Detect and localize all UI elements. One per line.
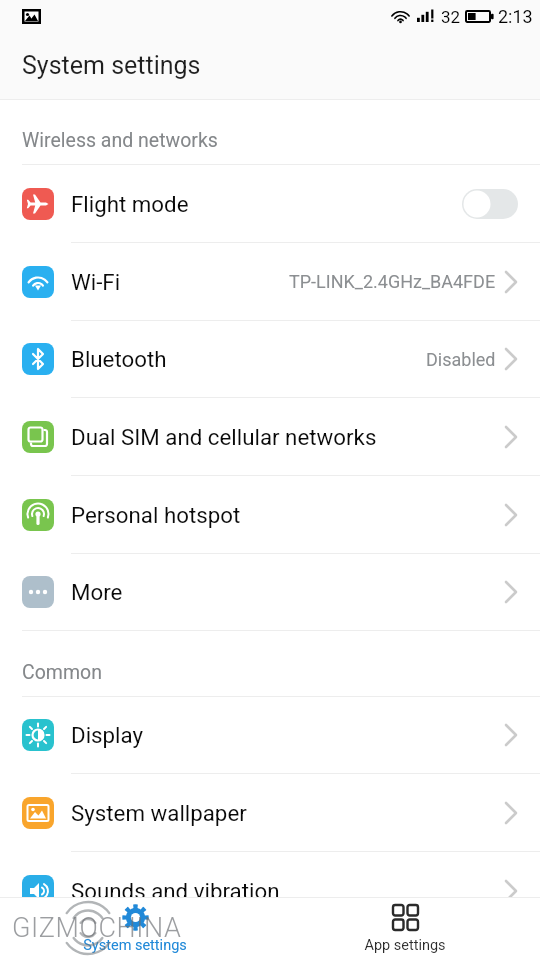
staticText: Flight mode [71,191,189,217]
button[interactable]: Bluetooth [0,321,540,398]
staticText: Display [71,722,144,748]
staticText: TP-LINK_2.4GHz_BA4FDE [289,271,496,292]
staticText: App settings [364,937,446,954]
staticText: Common [22,661,102,684]
button[interactable]: Display [0,697,540,774]
staticText: System wallpaper [71,800,247,826]
staticText: More [71,579,123,605]
staticText: Dual SIM and cellular networks [71,424,377,450]
staticText: GIZMOCHINA [12,912,182,944]
staticText: Bluetooth [71,346,167,372]
staticText: 32 [441,7,461,27]
staticText: Personal hotspot [71,502,241,528]
staticText: Wi-Fi [71,269,121,295]
button[interactable]: More [0,554,540,631]
button[interactable]: App settings [270,898,540,954]
button[interactable]: Personal hotspot [0,476,540,554]
staticText: Disabled [426,349,496,370]
button[interactable]: System wallpaper [0,774,540,852]
button[interactable]: Wi-Fi [0,243,540,321]
staticText: System settings [83,937,187,954]
staticText: 2:13 [498,6,533,27]
button[interactable]: Dual SIM and cellular networks [0,398,540,476]
staticText: System settings [22,51,201,80]
button[interactable]: System settings [0,898,270,954]
staticText: Wireless and networks [22,129,218,152]
button[interactable]: Sounds and vibration [0,852,540,930]
button[interactable]: Flight mode [0,165,540,243]
staticText: Sounds and vibration [71,878,280,904]
